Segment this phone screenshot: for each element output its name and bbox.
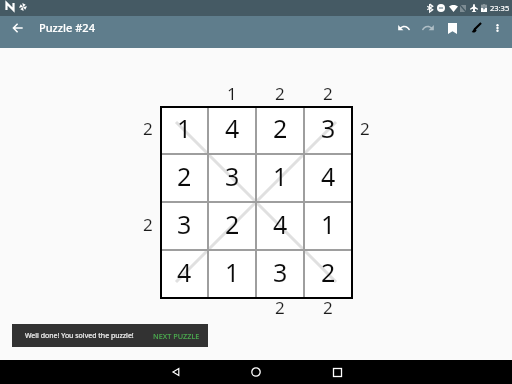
staticText: 2 — [323, 82, 333, 105]
staticText: 4 — [225, 111, 240, 145]
staticText: 2 — [275, 296, 285, 319]
staticText: 23:35 — [490, 3, 510, 13]
button[interactable]: 2 — [208, 202, 256, 250]
staticText: 2 — [323, 296, 333, 319]
staticText: 3 — [225, 159, 240, 193]
button[interactable]: 2 — [256, 106, 304, 154]
button[interactable]: NEXT PUZZLE — [149, 327, 204, 345]
staticText: 1 — [225, 255, 240, 289]
button[interactable]: Pen — [465, 17, 487, 39]
staticText: 4 — [321, 159, 336, 193]
staticText: 1 — [273, 159, 288, 193]
staticText: 4 — [177, 255, 192, 289]
staticText: 2 — [225, 207, 240, 241]
button[interactable]: 1 — [160, 106, 208, 154]
staticText: 3 — [273, 255, 288, 289]
staticText: 3 — [321, 111, 336, 145]
button[interactable]: Back — [168, 360, 184, 384]
staticText: 2 — [143, 213, 153, 236]
staticText: 2 — [321, 255, 336, 289]
button[interactable]: 4 — [256, 202, 304, 250]
staticText: 2 — [360, 117, 370, 140]
button[interactable]: 3 — [256, 250, 304, 298]
staticText: 1 — [227, 82, 237, 105]
button[interactable]: 4 — [304, 154, 352, 202]
button[interactable]: 3 — [208, 154, 256, 202]
button[interactable]: Bookmark — [441, 17, 463, 39]
button[interactable]: 4 — [160, 250, 208, 298]
staticText: 2 — [275, 82, 285, 105]
staticText: 1 — [177, 111, 192, 145]
button[interactable]: 4 — [208, 106, 256, 154]
staticText: 4 — [273, 207, 288, 241]
staticText: 2 — [273, 111, 288, 145]
staticText: 2 — [177, 159, 192, 193]
button[interactable]: More options — [486, 17, 508, 39]
button[interactable]: Redo — [417, 17, 439, 39]
staticText: Well done! You solved the puzzle! — [25, 331, 134, 341]
button[interactable]: Home — [248, 360, 264, 384]
button[interactable]: 1 — [304, 202, 352, 250]
staticText: NEXT PUZZLE — [153, 331, 200, 341]
staticText: 3 — [177, 207, 192, 241]
button[interactable]: 3 — [160, 202, 208, 250]
button[interactable]: Undo — [393, 17, 415, 39]
staticText: Puzzle #24 — [39, 20, 95, 35]
button[interactable]: Back — [7, 17, 29, 39]
button[interactable]: 2 — [160, 154, 208, 202]
button[interactable]: 1 — [256, 154, 304, 202]
staticText: 1 — [321, 207, 336, 241]
button[interactable]: Recent apps — [329, 360, 345, 384]
staticText: 2 — [143, 117, 153, 140]
button[interactable]: 2 — [304, 250, 352, 298]
button[interactable]: 3 — [304, 106, 352, 154]
button[interactable]: 1 — [208, 250, 256, 298]
